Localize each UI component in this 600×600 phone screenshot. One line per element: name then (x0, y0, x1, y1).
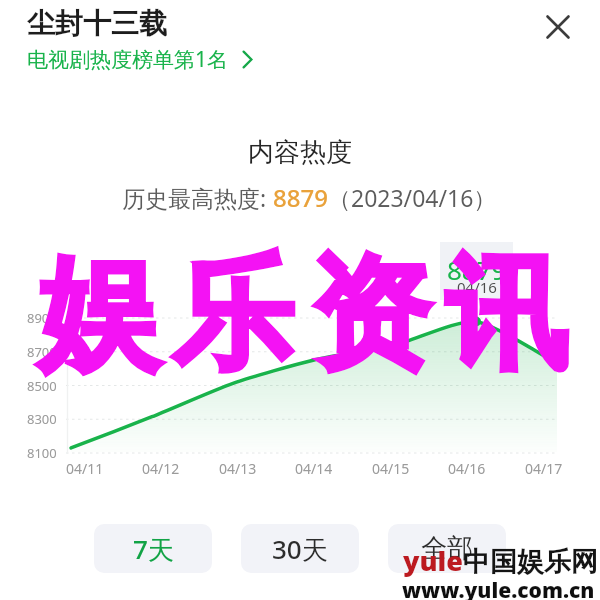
staticText: 8879 (273, 181, 328, 214)
staticText: （2023/04/16） (328, 182, 497, 213)
staticText: 讯 (445, 239, 567, 393)
staticText: 8300 (27, 410, 57, 428)
button[interactable]: Close (536, 5, 580, 49)
staticText: 娱 (38, 239, 160, 393)
staticText: 04/15 (372, 459, 410, 478)
staticText: 8879 (447, 252, 507, 287)
staticText: 8500 (27, 377, 57, 395)
staticText: 04/16 (457, 277, 497, 297)
staticText: 尘封十三载 (27, 6, 167, 41)
button[interactable]: 30天 (241, 524, 359, 573)
button[interactable]: 全部 (388, 524, 506, 573)
staticText: 7天 (133, 531, 174, 567)
staticText: 乐 (172, 239, 294, 393)
button[interactable]: 7天 (94, 524, 212, 573)
staticText: 30天 (272, 531, 328, 567)
staticText: 全部 (421, 532, 473, 565)
staticText: www.yule.com.cn (402, 576, 595, 600)
button[interactable]: 电视剧热度榜单第1名 (27, 45, 253, 74)
staticText: 8900 (27, 309, 57, 327)
staticText: yule (403, 542, 463, 579)
staticText: 中国娱乐网 (463, 545, 598, 579)
button[interactable]: 尘封十三载 (27, 6, 167, 41)
staticText: 电视剧热度榜单第1名 (27, 45, 229, 74)
staticText: 资 (309, 239, 431, 393)
staticText: 04/11 (66, 459, 104, 478)
staticText: 04/17 (525, 459, 563, 478)
staticText: 04/12 (142, 459, 180, 478)
staticText: 8700 (27, 343, 57, 361)
staticText: 历史最高热度: (122, 182, 273, 213)
staticText: 内容热度 (248, 136, 352, 169)
staticText: 04/14 (295, 459, 333, 478)
staticText: 8100 (27, 444, 57, 462)
staticText: 04/13 (219, 459, 257, 478)
staticText: 04/16 (448, 459, 486, 478)
